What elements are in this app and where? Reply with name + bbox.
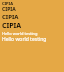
- staticText: CIPIA: [2, 21, 22, 31]
- staticText: CIPIA: [2, 6, 16, 13]
- staticText: Hello world testing: [2, 36, 47, 43]
- staticText: Hello world testing: [2, 31, 38, 36]
- staticText: CIPIA: [2, 13, 19, 21]
- staticText: CIPIA: [2, 1, 13, 6]
